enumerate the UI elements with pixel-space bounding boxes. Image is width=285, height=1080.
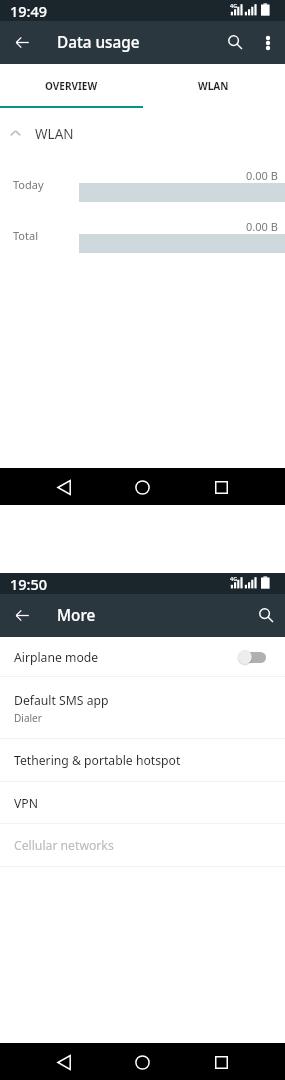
staticText: WLAN (35, 125, 74, 143)
button[interactable]: Back (45, 1044, 84, 1080)
button[interactable]: Search (248, 594, 285, 637)
staticText: Data usage (57, 32, 140, 53)
staticText: 19:50 (10, 574, 48, 594)
staticText: Tethering & portable hotspot (14, 752, 181, 769)
staticText: Total (13, 228, 38, 243)
staticText: Airplane mode (14, 649, 99, 666)
button[interactable]: Recents (202, 1044, 241, 1080)
staticText: 0.00 B (246, 219, 278, 234)
button[interactable]: Navigate up (0, 594, 45, 637)
button[interactable]: Recents (202, 469, 241, 506)
staticText: Cellular networks (14, 837, 114, 854)
staticText: 4G (230, 2, 238, 9)
button[interactable]: Back (45, 469, 84, 506)
staticText: 19:49 (10, 1, 48, 21)
button[interactable]: Cellular networks (0, 824, 285, 867)
staticText: Default SMS app (14, 692, 109, 709)
button[interactable]: Tethering & portable hotspot (0, 739, 285, 782)
staticText: Dialer (14, 711, 42, 725)
staticText: VPN (14, 795, 38, 812)
button[interactable]: Airplane mode (0, 637, 285, 677)
staticText: Today (13, 177, 44, 192)
button[interactable]: WLAN (0, 121, 285, 147)
button[interactable]: VPN (0, 782, 285, 824)
button[interactable]: Home (123, 469, 162, 506)
button[interactable]: Navigate up (0, 21, 45, 64)
button[interactable]: Home (123, 1044, 162, 1080)
staticText: More (57, 605, 96, 626)
staticText: 4G (230, 575, 238, 582)
staticText: OVERVIEW (45, 79, 98, 93)
button[interactable]: Default SMS app (0, 677, 285, 739)
button[interactable]: OVERVIEW (0, 64, 142, 108)
staticText: 0.00 B (246, 168, 278, 183)
staticText: WLAN (198, 79, 229, 93)
button[interactable]: Search (220, 21, 250, 64)
button[interactable]: WLAN (142, 64, 285, 108)
button[interactable]: More options (250, 21, 285, 64)
